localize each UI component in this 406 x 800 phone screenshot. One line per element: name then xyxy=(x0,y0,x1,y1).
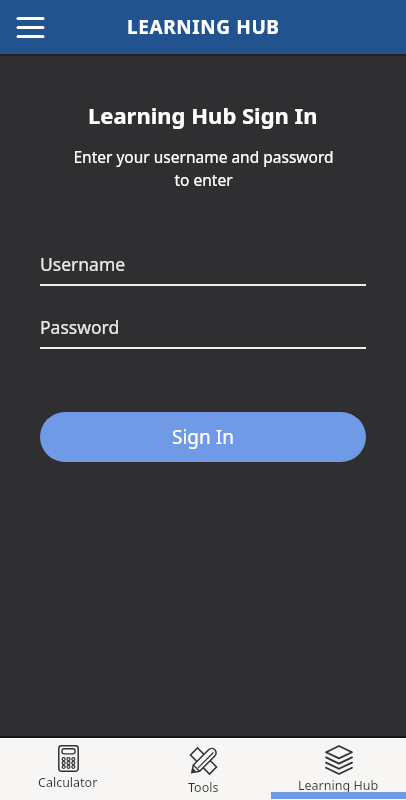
staticText: Username xyxy=(40,252,126,276)
staticText: Learning Hub xyxy=(298,777,379,794)
button[interactable]: Username xyxy=(40,252,366,286)
staticText: Enter your username and password to ente… xyxy=(73,146,334,191)
button[interactable]: Password xyxy=(40,315,366,349)
button[interactable]: Sign In xyxy=(40,412,366,462)
staticText: Calculator xyxy=(38,774,98,791)
staticText: Sign In xyxy=(172,424,234,450)
button[interactable] xyxy=(10,7,50,47)
button[interactable]: Calculator xyxy=(0,738,136,800)
staticText: LEARNING HUB xyxy=(127,14,280,40)
button[interactable]: Learning Hub xyxy=(271,738,406,800)
button[interactable]: Tools xyxy=(136,738,271,800)
staticText: Tools xyxy=(188,779,219,796)
staticText: Learning Hub Sign In xyxy=(88,100,318,130)
staticText: Password xyxy=(40,315,120,339)
